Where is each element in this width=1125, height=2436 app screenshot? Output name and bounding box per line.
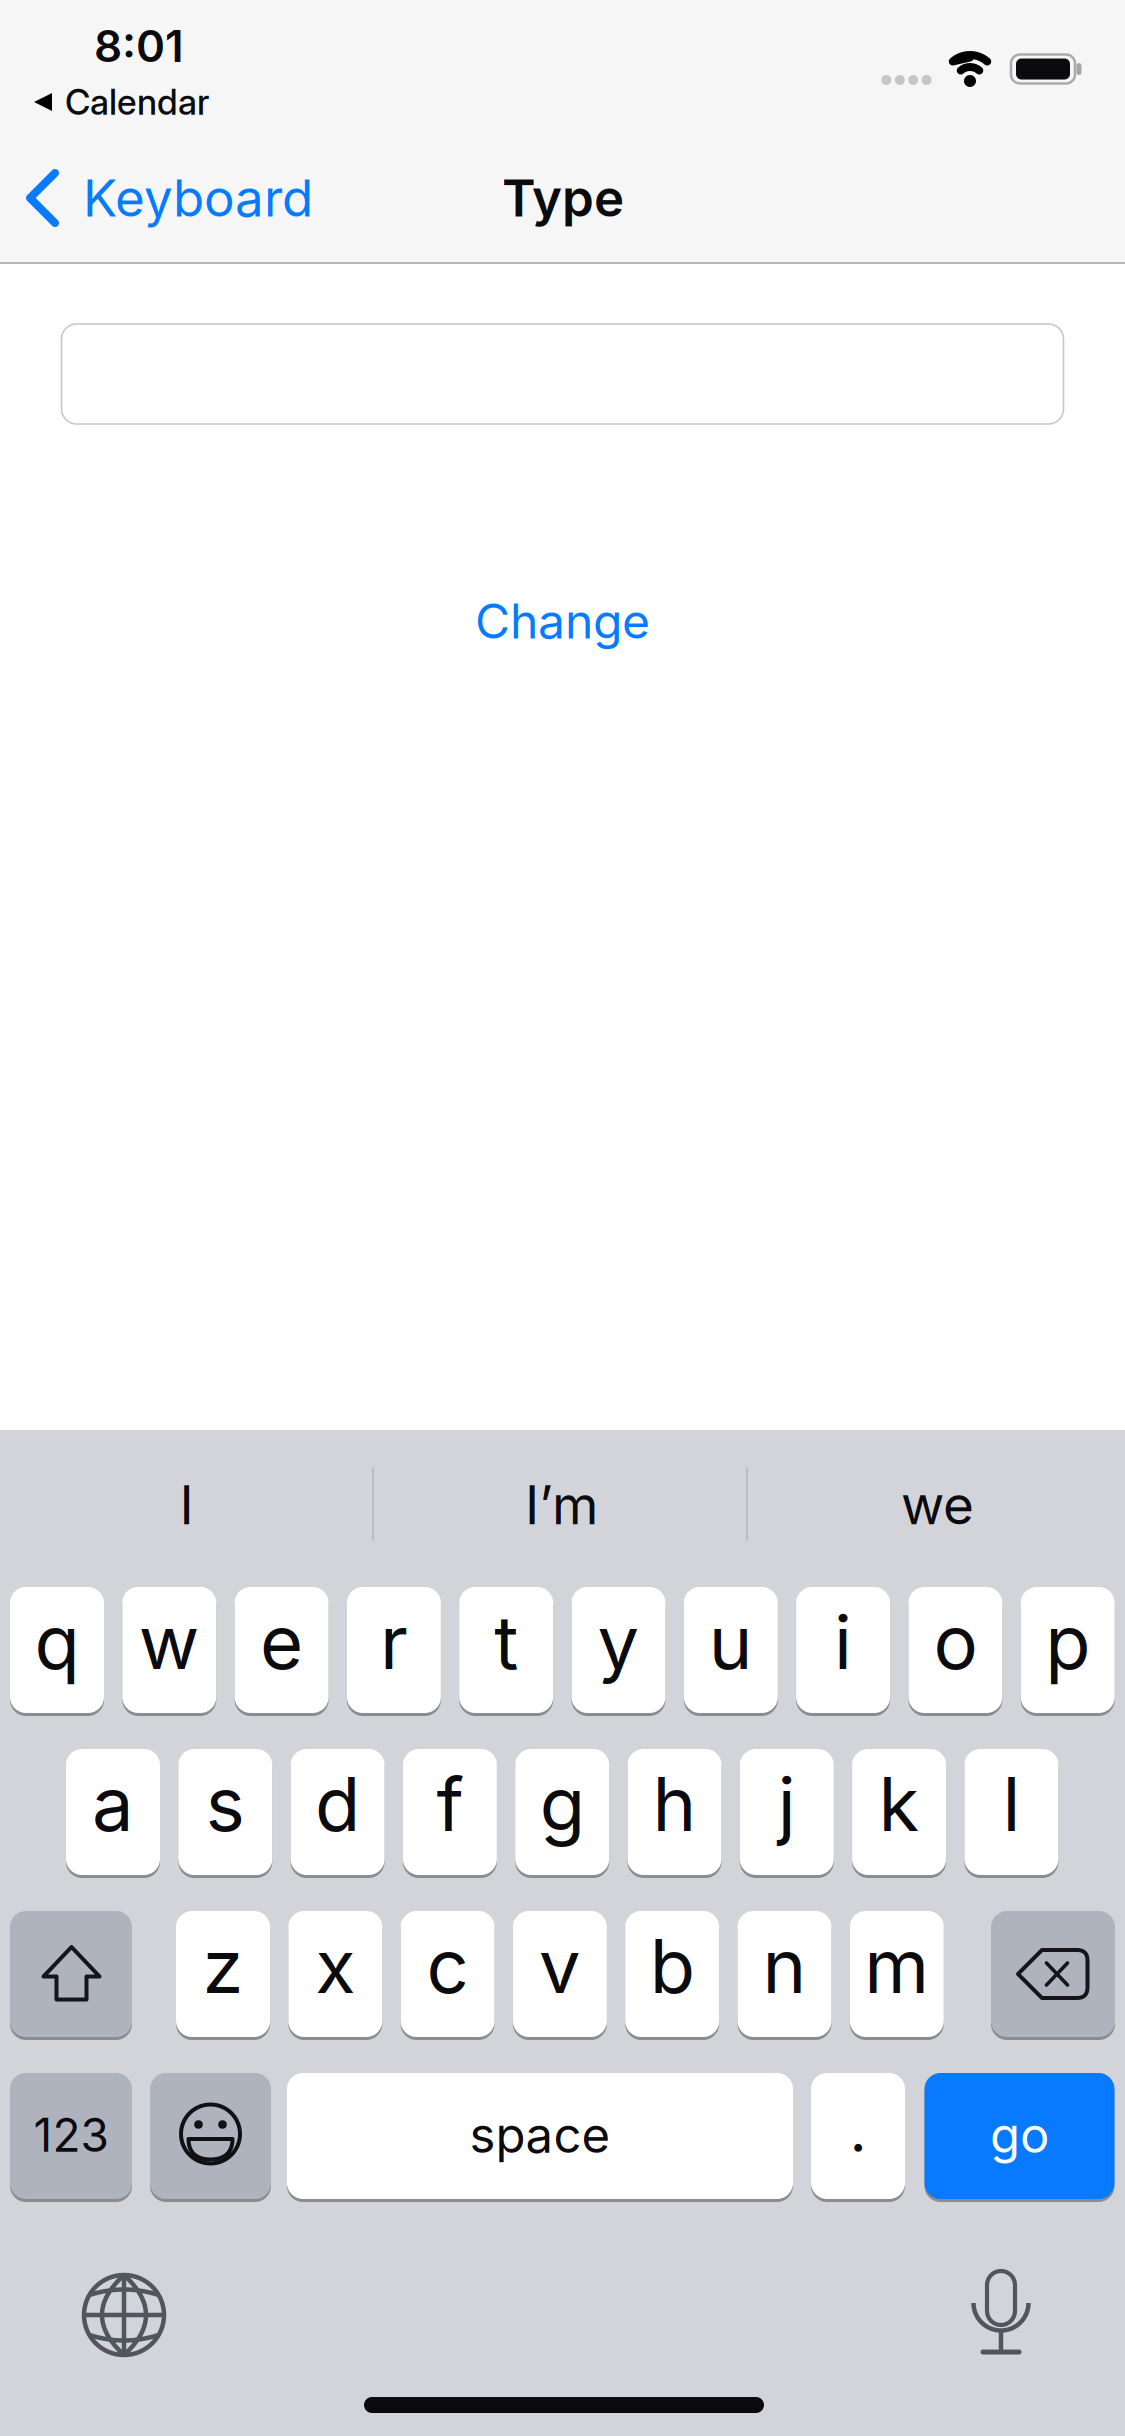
button[interactable]: e — [235, 1587, 329, 1713]
staticText: q — [34, 1597, 79, 1687]
button[interactable]: 123 — [10, 2073, 132, 2199]
staticText: i — [834, 1597, 852, 1687]
staticText: n — [762, 1921, 806, 2011]
button[interactable]: . — [811, 2073, 905, 2199]
staticText: k — [879, 1759, 920, 1849]
staticText: u — [709, 1597, 753, 1687]
staticText: c — [427, 1921, 469, 2011]
staticText: d — [315, 1759, 360, 1849]
button[interactable]: we — [757, 1430, 1117, 1580]
staticText: y — [597, 1597, 639, 1687]
button[interactable]: I — [6, 1430, 366, 1580]
staticText: l — [1002, 1759, 1020, 1849]
staticText: I’m — [525, 1473, 598, 1537]
staticText: z — [202, 1921, 243, 2011]
staticText: o — [933, 1597, 977, 1687]
button[interactable]: g — [515, 1749, 609, 1875]
staticText: 123 — [33, 2107, 108, 2163]
staticText: v — [539, 1921, 581, 2011]
button[interactable]: m — [850, 1911, 944, 2037]
button[interactable]: n — [737, 1911, 831, 2037]
button[interactable]: b — [625, 1911, 719, 2037]
button[interactable]: f — [403, 1749, 497, 1875]
staticText: 8:01 — [94, 19, 184, 73]
button[interactable]: Text field — [61, 324, 1063, 424]
button[interactable]: s — [178, 1749, 272, 1875]
staticText: I — [179, 1473, 193, 1537]
staticText: Change — [475, 592, 650, 650]
staticText: p — [1045, 1597, 1090, 1687]
staticText: . — [849, 2094, 866, 2166]
button[interactable]: y — [571, 1587, 665, 1713]
button[interactable]: Dictation — [956, 2260, 1046, 2380]
staticText: e — [260, 1597, 303, 1687]
staticText: space — [469, 2105, 610, 2165]
button[interactable]: Next keyboard — [59, 2250, 189, 2380]
staticText: Keyboard — [83, 167, 313, 229]
button[interactable]: x — [288, 1911, 382, 2037]
staticText: we — [901, 1473, 974, 1537]
staticText: h — [652, 1759, 696, 1849]
button[interactable]: p — [1021, 1587, 1115, 1713]
button[interactable]: space — [287, 2073, 793, 2199]
staticText: x — [315, 1921, 355, 2011]
button[interactable]: Shift — [10, 1911, 132, 2037]
button[interactable]: t — [459, 1587, 553, 1713]
button[interactable]: Delete — [991, 1911, 1115, 2037]
button[interactable]: i — [796, 1587, 890, 1713]
button[interactable]: c — [401, 1911, 495, 2037]
staticText: m — [864, 1921, 929, 2011]
button[interactable]: d — [291, 1749, 385, 1875]
button[interactable]: Change — [475, 592, 650, 650]
button[interactable]: v — [513, 1911, 607, 2037]
button[interactable]: z — [176, 1911, 270, 2037]
staticText: w — [139, 1597, 200, 1687]
button[interactable]: j — [740, 1749, 834, 1875]
staticText: Calendar — [65, 81, 209, 123]
staticText: Type — [502, 167, 624, 229]
button[interactable]: r — [347, 1587, 441, 1713]
staticText: g — [540, 1759, 585, 1849]
button[interactable]: l — [964, 1749, 1058, 1875]
staticText: r — [380, 1597, 408, 1687]
staticText: go — [990, 2105, 1049, 2165]
staticText: b — [650, 1921, 695, 2011]
button[interactable]: u — [684, 1587, 778, 1713]
button[interactable]: a — [66, 1749, 160, 1875]
button[interactable]: I’m — [381, 1430, 741, 1580]
staticText: a — [92, 1759, 134, 1849]
button[interactable]: Emoji — [150, 2073, 271, 2199]
staticText: f — [436, 1759, 463, 1849]
button[interactable]: Back to Keyboard — [27, 167, 313, 229]
button[interactable]: o — [908, 1587, 1002, 1713]
staticText: j — [778, 1759, 796, 1849]
button[interactable]: q — [10, 1587, 104, 1713]
button[interactable]: go — [924, 2073, 1114, 2199]
button[interactable]: Back to Calendar — [34, 81, 209, 123]
button[interactable]: w — [122, 1587, 216, 1713]
staticText: t — [494, 1597, 518, 1687]
staticText: s — [206, 1759, 245, 1849]
button[interactable]: k — [852, 1749, 946, 1875]
button[interactable]: h — [627, 1749, 721, 1875]
